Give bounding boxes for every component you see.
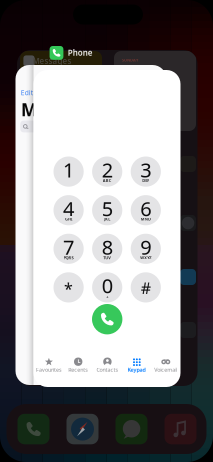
button[interactable]: Messages <box>115 414 147 444</box>
staticText: GHI <box>65 216 72 222</box>
button[interactable]: Phone <box>17 414 49 444</box>
button[interactable]: Music <box>164 414 196 444</box>
staticText: Messages <box>32 55 71 66</box>
staticText: PQRS <box>64 255 74 260</box>
staticText: WXYZ <box>140 255 151 260</box>
button[interactable]: 0 <box>92 272 122 302</box>
button[interactable]: 5 <box>92 195 122 225</box>
staticText: 4 <box>63 195 74 222</box>
staticText: 0 <box>102 272 113 299</box>
button[interactable]: 7 <box>53 234 84 264</box>
staticText: JKL <box>104 216 110 222</box>
button[interactable]: 3 <box>131 156 161 187</box>
staticText: Voicemail <box>154 366 177 373</box>
button[interactable]: Contacts <box>93 355 122 375</box>
staticText: 8 <box>102 234 113 260</box>
button[interactable]: 8 <box>92 234 122 264</box>
staticText: 9 <box>140 234 151 260</box>
staticText: 1 <box>63 156 74 183</box>
staticText: 2 <box>102 156 113 183</box>
button[interactable]: 6 <box>131 195 161 225</box>
staticText: Recents <box>68 366 88 373</box>
button[interactable]: Keypad <box>122 355 151 375</box>
staticText: Phone <box>68 47 93 58</box>
button[interactable]: 2 <box>92 156 122 187</box>
staticText: 5 <box>102 195 113 222</box>
button[interactable]: Voicemail <box>151 355 180 375</box>
staticText: 6 <box>140 195 151 222</box>
button[interactable]: 1 <box>53 156 84 187</box>
staticText: 3 <box>140 156 151 183</box>
staticText: Keypad <box>128 366 146 373</box>
staticText: ABC <box>103 178 112 183</box>
button[interactable]: Safari <box>66 414 98 444</box>
staticText: Favourites <box>36 366 62 373</box>
staticText: DEF <box>142 178 149 183</box>
staticText: TUV <box>103 255 111 260</box>
button[interactable]: # <box>131 272 161 302</box>
staticText: # <box>141 278 151 299</box>
button[interactable]: Favourites <box>34 355 63 375</box>
staticText: Messages <box>21 98 105 121</box>
button[interactable]: 4 <box>53 195 84 225</box>
staticText: Contacts <box>96 366 118 373</box>
staticText: + <box>106 293 108 299</box>
staticText: 7 <box>63 234 74 260</box>
button[interactable]: Call <box>92 304 122 334</box>
button[interactable]: * <box>53 272 84 302</box>
staticText: Edit <box>21 88 33 97</box>
staticText: SUNDAY <box>122 57 139 63</box>
button[interactable]: 9 <box>131 234 161 264</box>
staticText: * <box>64 278 73 299</box>
staticText: MNO <box>141 216 151 222</box>
button[interactable]: Recents <box>64 355 93 375</box>
